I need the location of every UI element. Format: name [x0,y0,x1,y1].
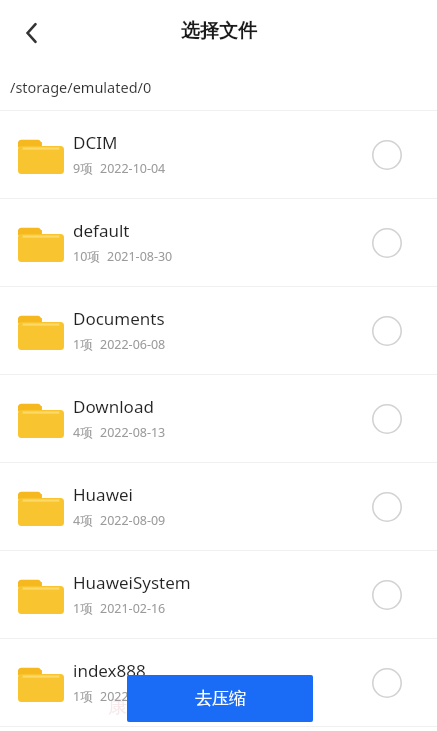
button[interactable]: Select Huawei [365,485,409,529]
staticText: Download [73,395,154,418]
staticText: /storage/emulated/0 [10,77,152,97]
staticText: DCIM [73,131,118,154]
staticText: 1项 [73,336,93,353]
button[interactable]: 去压缩 [127,675,313,722]
staticText: 1项 [73,688,93,705]
staticText: index888 [73,659,146,682]
staticText: Huawei [73,483,133,506]
staticText: 2021-08-30 [107,248,173,265]
button[interactable]: Select index888 [365,661,409,705]
button[interactable]: Select Documents [365,309,409,353]
staticText: 4项 [73,424,93,441]
staticText: HuaweiSystem [73,571,191,594]
staticText: 1项 [73,600,93,617]
button[interactable]: DCIM [0,111,437,198]
staticText: 去压缩 [195,688,246,709]
button[interactable]: Back [12,13,52,53]
button[interactable]: Select DCIM [365,133,409,177]
button[interactable]: default [0,199,437,286]
staticText: 4项 [73,512,93,529]
button[interactable]: Select default [365,221,409,265]
staticText: 2022-10-04 [100,160,166,177]
button[interactable]: Documents [0,287,437,374]
button[interactable]: Download [0,375,437,462]
staticText: 2022-08-13 [100,424,166,441]
staticText: 2022-09-01 [100,688,166,705]
staticText: default [73,219,130,242]
staticText: 2022-08-09 [100,512,166,529]
staticText: 9项 [73,160,93,177]
staticText: 选择文件 [181,19,257,43]
staticText: 10项 [73,248,100,265]
staticText: KANGZM.COM [180,694,309,720]
staticText: Documents [73,307,165,330]
button[interactable]: HuaweiSystem [0,551,437,638]
staticText: 康掌门 [108,695,165,719]
button[interactable]: Select HuaweiSystem [365,573,409,617]
staticText: 2022-06-08 [100,336,166,353]
button[interactable]: Select Download [365,397,409,441]
staticText: 2021-02-16 [100,600,166,617]
button[interactable]: Huawei [0,463,437,550]
button[interactable]: index888 [0,639,437,726]
